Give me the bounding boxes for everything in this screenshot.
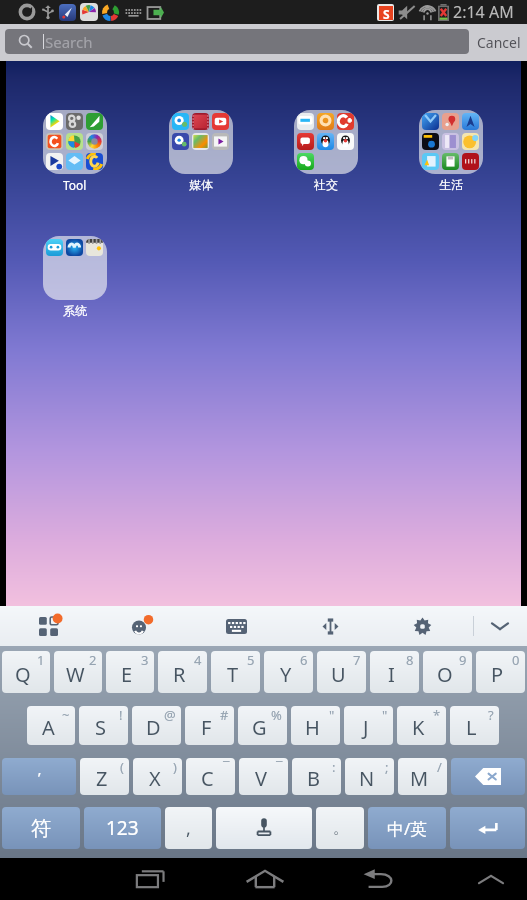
button[interactable]: 符	[2, 807, 80, 849]
staticText: Z	[96, 765, 108, 792]
button[interactable]: Hide keyboard	[477, 606, 523, 646]
button[interactable]: N	[345, 758, 394, 795]
staticText: (	[120, 758, 124, 776]
button[interactable]: V	[239, 758, 288, 795]
button[interactable]: 。	[316, 807, 364, 849]
staticText: U	[331, 661, 346, 688]
staticText: "	[329, 706, 335, 724]
staticText: 5	[247, 651, 255, 669]
staticText: 7	[353, 651, 361, 669]
staticText: I	[388, 661, 395, 688]
button[interactable]: Emoji sticker panel	[25, 606, 71, 646]
staticText: !	[119, 706, 123, 724]
button[interactable]: R	[158, 651, 207, 693]
button[interactable]: F	[185, 706, 234, 745]
staticText: 0	[512, 651, 520, 669]
staticText: 2	[89, 651, 97, 669]
staticText: X	[149, 765, 161, 792]
staticText: *	[433, 706, 441, 724]
button[interactable]: 媒体	[169, 110, 233, 192]
button[interactable]: 社交	[294, 110, 358, 192]
button[interactable]: H	[291, 706, 340, 745]
button[interactable]: Backspace	[451, 758, 525, 795]
button[interactable]: T	[211, 651, 260, 693]
staticText: 123	[106, 815, 139, 841]
staticText: )	[173, 758, 177, 776]
staticText: @	[164, 706, 176, 724]
staticText: 符	[31, 816, 51, 841]
staticText: C	[201, 765, 214, 792]
button[interactable]: Search	[5, 29, 469, 54]
button[interactable]: L	[450, 706, 499, 745]
staticText: #	[220, 706, 229, 724]
button[interactable]: D	[132, 706, 181, 745]
staticText: P	[491, 661, 504, 688]
staticText: L	[466, 714, 477, 741]
staticText: "	[382, 706, 388, 724]
staticText: 3	[141, 651, 149, 669]
staticText: ~	[62, 706, 70, 724]
button[interactable]: U	[317, 651, 366, 693]
button[interactable]: Tool	[43, 110, 107, 193]
staticText: V	[255, 765, 267, 792]
button[interactable]: J	[344, 706, 393, 745]
staticText: ,	[186, 816, 191, 841]
button[interactable]: Keyboard layout	[213, 606, 259, 646]
staticText: ;	[385, 758, 389, 776]
button[interactable]: Z	[80, 758, 129, 795]
button[interactable]: 系统	[43, 236, 107, 318]
staticText: Search	[45, 32, 93, 52]
button[interactable]: E	[106, 651, 154, 693]
staticText: S	[95, 714, 106, 741]
staticText: G	[252, 714, 267, 741]
staticText: B	[307, 765, 320, 792]
button[interactable]: 123	[84, 807, 161, 849]
staticText: 。	[333, 819, 348, 838]
button[interactable]: G	[238, 706, 287, 745]
staticText: W	[66, 661, 85, 688]
button[interactable]: I	[370, 651, 419, 693]
staticText: A	[42, 714, 55, 741]
staticText: 2:14 AM	[453, 1, 514, 23]
button[interactable]: Settings	[399, 606, 445, 646]
button[interactable]: W	[54, 651, 102, 693]
button[interactable]: Back	[350, 858, 406, 900]
button[interactable]: Cancel	[477, 33, 521, 52]
button[interactable]: Show menu	[463, 858, 519, 900]
button[interactable]: O	[423, 651, 472, 693]
staticText: 6	[300, 651, 308, 669]
button[interactable]: Home	[237, 858, 293, 900]
button[interactable]: 中/英	[368, 807, 446, 849]
staticText: %	[271, 706, 282, 724]
button[interactable]: C	[186, 758, 235, 795]
staticText: Q	[15, 661, 31, 688]
staticText: 8	[406, 651, 414, 669]
button[interactable]: X	[133, 758, 182, 795]
staticText: T	[227, 661, 239, 688]
button[interactable]: ,	[165, 807, 212, 849]
button[interactable]: B	[292, 758, 341, 795]
button[interactable]: Recent apps	[122, 858, 178, 900]
staticText: ’	[38, 767, 41, 787]
staticText: ?	[488, 706, 494, 724]
button[interactable]: Y	[264, 651, 313, 693]
button[interactable]: Space / voice input	[216, 807, 312, 849]
staticText: Tool	[63, 177, 87, 193]
button[interactable]: Emoji	[117, 606, 163, 646]
button[interactable]: Move cursor	[307, 606, 353, 646]
button[interactable]: A	[27, 706, 75, 745]
button[interactable]: P	[476, 651, 525, 693]
staticText: K	[412, 714, 425, 741]
button[interactable]: ’	[2, 758, 76, 795]
button[interactable]: K	[397, 706, 446, 745]
button[interactable]: S	[79, 706, 128, 745]
staticText: F	[201, 714, 212, 741]
button[interactable]: M	[398, 758, 447, 795]
staticText: N	[359, 765, 375, 792]
button[interactable]: Q	[2, 651, 50, 693]
button[interactable]: Enter	[450, 807, 525, 849]
staticText: :	[332, 758, 336, 776]
staticText: 1	[37, 651, 45, 669]
button[interactable]: 生活	[419, 110, 483, 192]
staticText: Y	[280, 661, 292, 688]
